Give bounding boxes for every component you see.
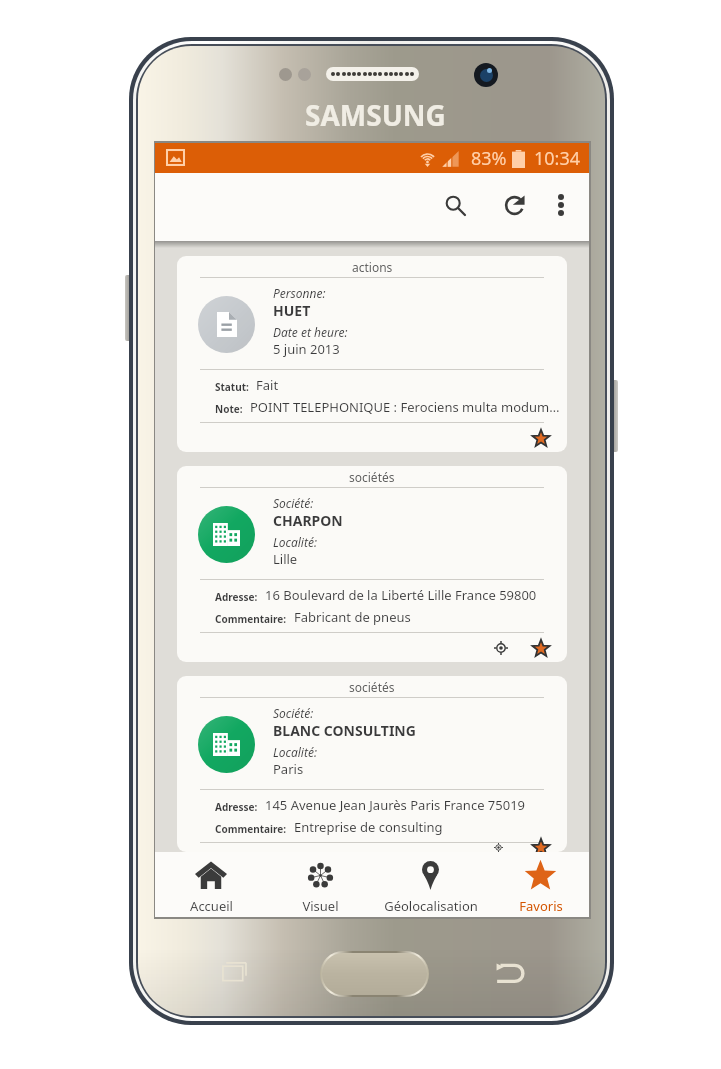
staticText: Société: [273, 495, 314, 511]
staticText: Favoris [519, 897, 563, 915]
button[interactable]: Search [431, 181, 479, 229]
staticText: 83% [471, 146, 507, 171]
staticText: Fait [256, 376, 279, 394]
staticText: Personne: [273, 285, 326, 301]
staticText: Société: [273, 705, 314, 721]
staticText: 16 Boulevard de la Liberté Lille France … [265, 586, 537, 604]
staticText: Date et heure: [273, 324, 348, 340]
staticText: actions [352, 259, 393, 275]
staticText: Commentaire: [215, 822, 287, 836]
staticText: Accueil [190, 897, 233, 915]
staticText: Lille [273, 550, 298, 568]
button[interactable]: Locate [488, 635, 514, 661]
button[interactable]: Géolocalisation [376, 852, 485, 917]
button[interactable]: Favoris [486, 852, 595, 917]
staticText: Géolocalisation [384, 897, 478, 915]
staticText: Adresse: [215, 590, 258, 604]
staticText: Commentaire: [215, 612, 287, 626]
staticText: sociétés [349, 469, 395, 485]
staticText: BLANC CONSULTING [273, 721, 416, 740]
staticText: Entreprise de consulting [294, 818, 443, 836]
staticText: Visuel [302, 897, 339, 915]
button[interactable]: Favorite [528, 635, 554, 661]
staticText: POINT TELEPHONIQUE : Ferociens multa mod… [250, 398, 562, 416]
button[interactable]: Favorite [528, 425, 554, 451]
staticText: 10:34 [534, 146, 581, 171]
staticText: Paris [273, 760, 304, 778]
staticText: Fabricant de pneus [294, 608, 411, 626]
button[interactable]: sociétés [177, 466, 567, 662]
button[interactable]: Refresh [490, 181, 538, 229]
button[interactable]: Accueil [157, 852, 265, 917]
staticText: Localité: [273, 744, 317, 760]
button[interactable]: actions [177, 256, 567, 452]
staticText: HUET [273, 301, 311, 320]
staticText: CHARPON [273, 511, 343, 530]
staticText: sociétés [349, 679, 395, 695]
staticText: 145 Avenue Jean Jaurès Paris France 7501… [265, 796, 526, 814]
staticText: SAMSUNG [305, 96, 446, 134]
staticText: Adresse: [215, 800, 258, 814]
button[interactable]: Visuel [266, 852, 374, 917]
button[interactable]: sociétés [177, 676, 567, 852]
button[interactable]: Favorite [528, 843, 554, 852]
button[interactable]: More options [539, 183, 583, 227]
staticText: 5 juin 2013 [273, 340, 340, 358]
staticText: Note: [215, 402, 243, 416]
staticText: Localité: [273, 534, 317, 550]
staticText: Statut: [215, 380, 249, 394]
button[interactable]: Locate [488, 843, 514, 852]
